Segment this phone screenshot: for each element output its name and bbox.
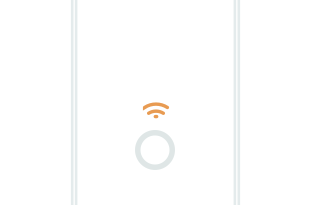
button[interactable]: Connecting to Wi-Fi xyxy=(125,102,185,170)
